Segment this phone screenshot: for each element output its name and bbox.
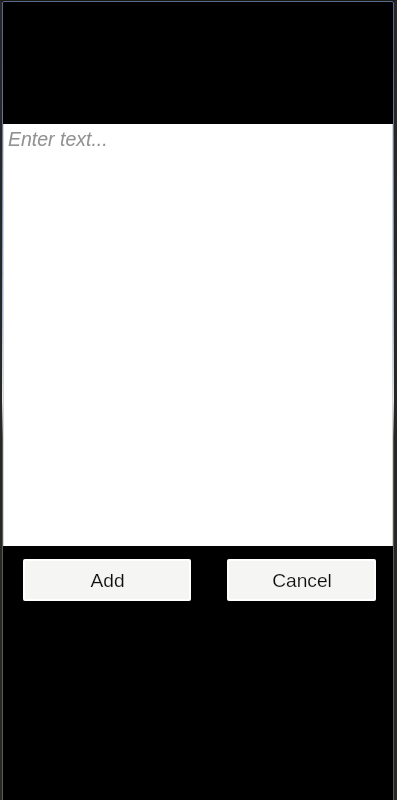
- button[interactable]: Add: [23, 559, 191, 601]
- staticText: Add: [90, 570, 125, 591]
- button[interactable]: Text input field: [3, 124, 393, 546]
- staticText: Enter text...: [8, 128, 108, 150]
- button[interactable]: Cancel: [227, 559, 376, 601]
- staticText: Cancel: [272, 570, 332, 591]
